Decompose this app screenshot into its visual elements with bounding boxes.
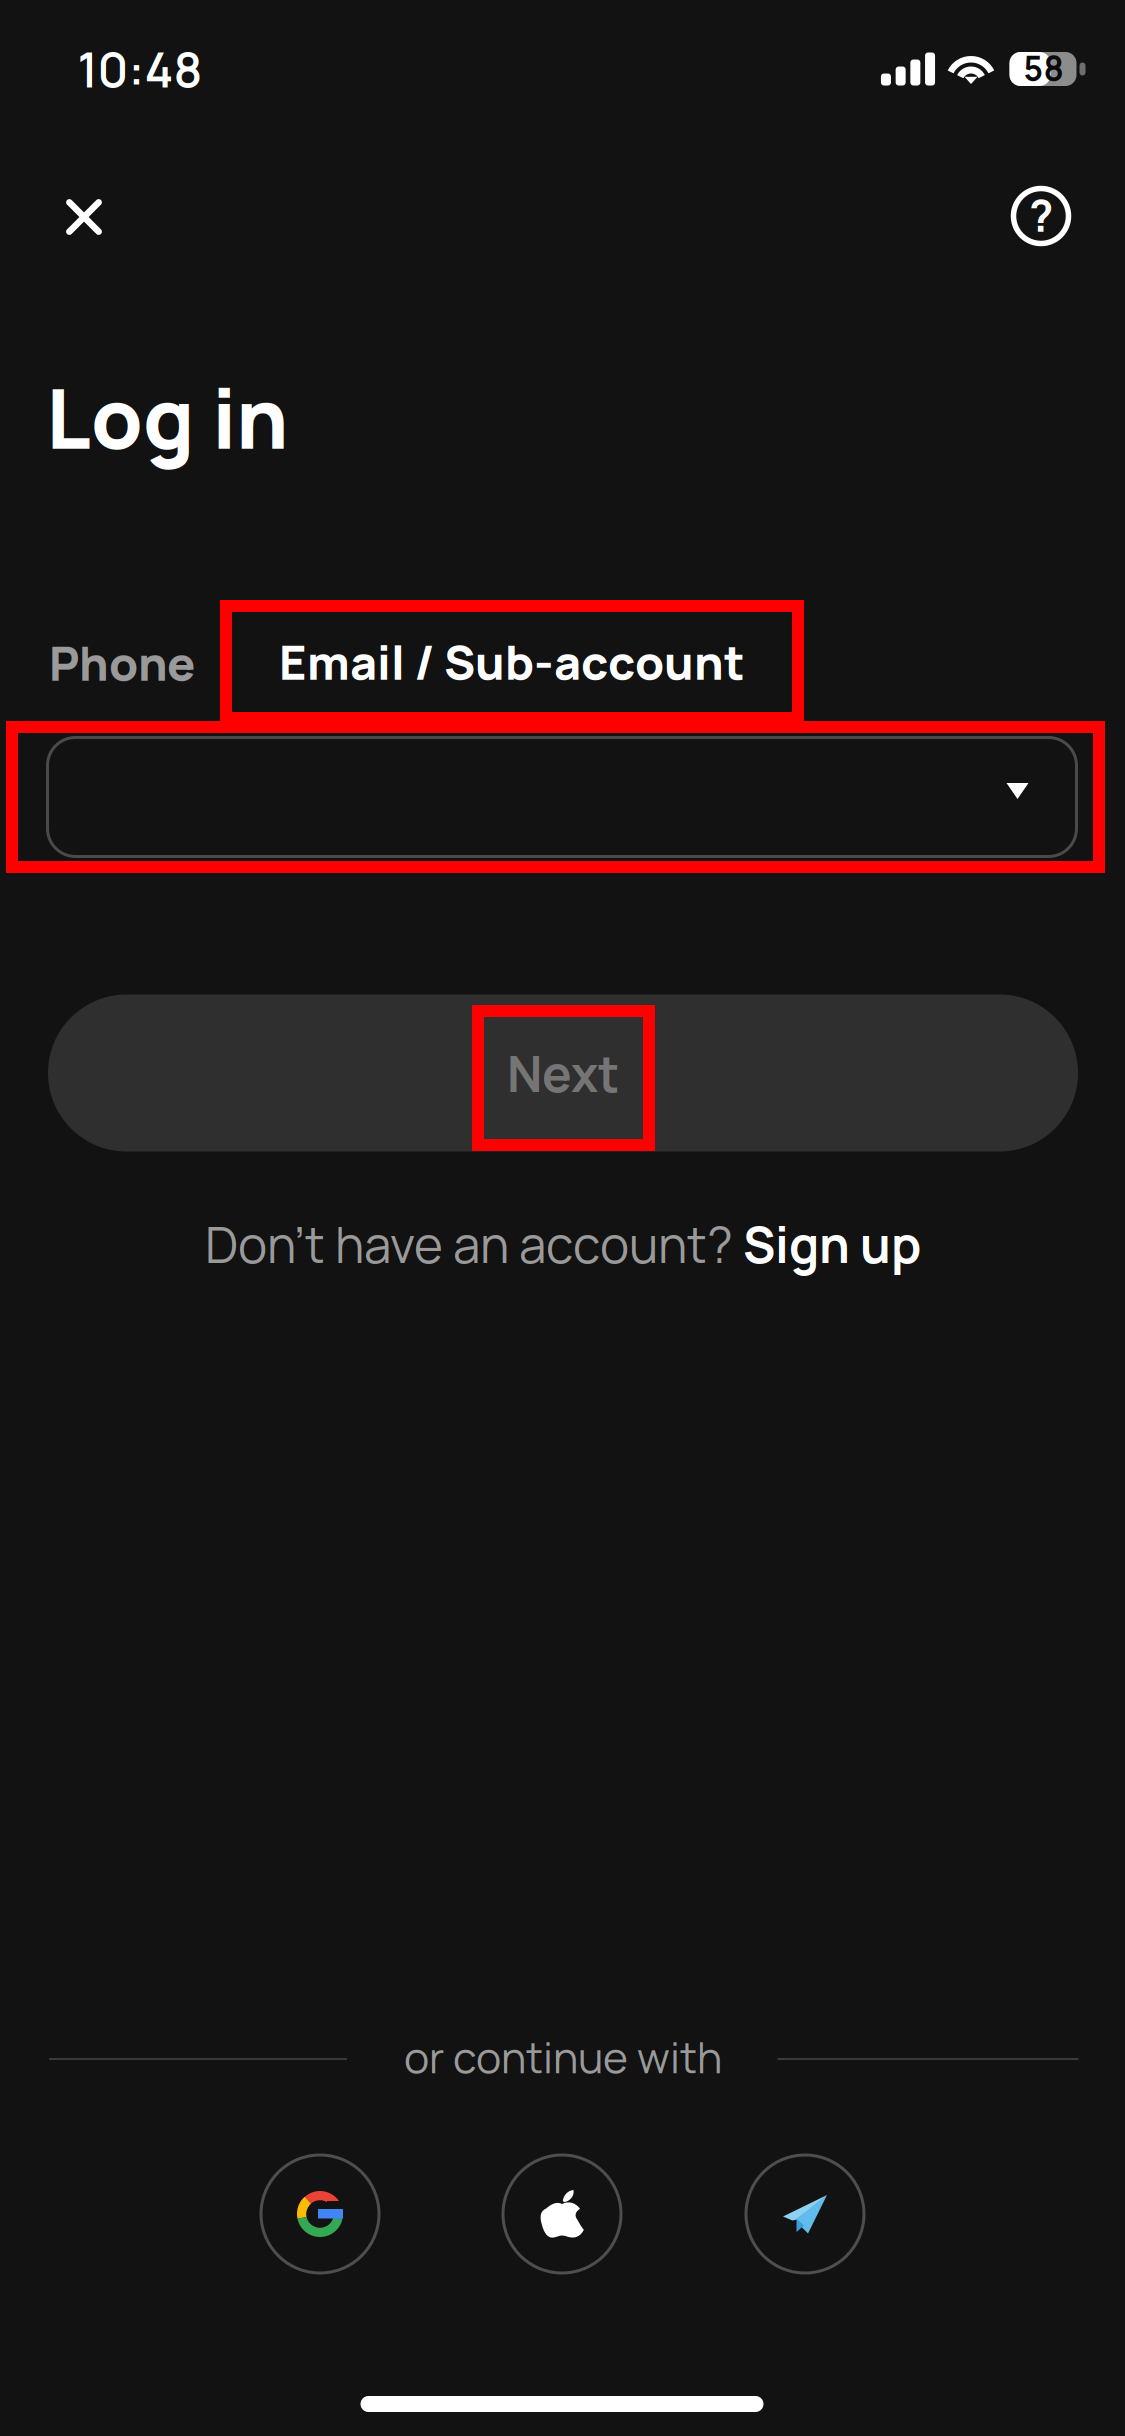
button[interactable]: Continue with Apple [503, 2155, 621, 2273]
staticText: Don't have an account? [205, 1210, 743, 1278]
button[interactable]: Email / Sub-account [226, 606, 798, 718]
staticText: 10:48 [77, 36, 202, 102]
staticText: Phone [49, 631, 195, 695]
staticText: 58 [1023, 45, 1063, 91]
staticText: Log in [46, 360, 289, 473]
button[interactable]: Continue with Telegram [746, 2155, 864, 2273]
button[interactable]: Next [48, 994, 1078, 1151]
button[interactable]: Don't have an account? [183, 1202, 943, 1286]
button[interactable]: Close [29, 167, 139, 267]
button[interactable]: Phone [27, 607, 217, 719]
staticText: Next [507, 1039, 619, 1107]
button[interactable]: Email or sub-account [47, 737, 1076, 856]
button[interactable]: Continue with Google [261, 2155, 379, 2273]
staticText: Email / Sub-account [279, 630, 745, 694]
button[interactable]: Help [991, 166, 1091, 266]
staticText: ? [1029, 185, 1053, 245]
staticText: Sign up [743, 1210, 921, 1278]
staticText: or continue with [404, 2028, 722, 2086]
